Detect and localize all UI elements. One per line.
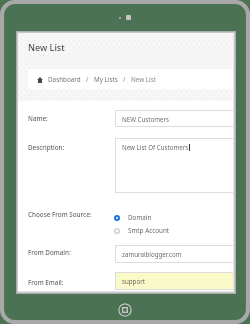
staticText: Domain (128, 213, 152, 222)
staticText: From Domain: (28, 248, 71, 257)
staticText: support (122, 277, 145, 285)
staticText: / (123, 75, 126, 84)
button[interactable]: Home (118, 303, 132, 317)
button[interactable]: Dashboard (28, 69, 233, 89)
staticText: Choose From Source: (28, 210, 92, 219)
button[interactable]: zamuraiblogger.com (115, 245, 233, 263)
button[interactable]: support (115, 272, 233, 290)
staticText: Name: (28, 114, 48, 123)
button[interactable]: Smtp Account (114, 226, 174, 235)
staticText: Dashboard (48, 75, 81, 84)
staticText: Smtp Account (128, 226, 170, 235)
staticText: New List (131, 75, 157, 84)
button[interactable]: Domain (114, 213, 156, 222)
staticText: zamuraiblogger.com (122, 250, 182, 258)
staticText: My Lists (94, 75, 118, 84)
staticText: New List Of Customers (122, 143, 189, 151)
staticText: / (86, 75, 89, 84)
staticText: New List (28, 41, 65, 53)
staticText: From Email: (28, 278, 64, 287)
staticText: Description: (28, 143, 65, 152)
button[interactable]: New List Of Customers (115, 138, 233, 193)
staticText: NEW Customers (122, 115, 169, 123)
button[interactable]: NEW Customers (115, 110, 233, 127)
